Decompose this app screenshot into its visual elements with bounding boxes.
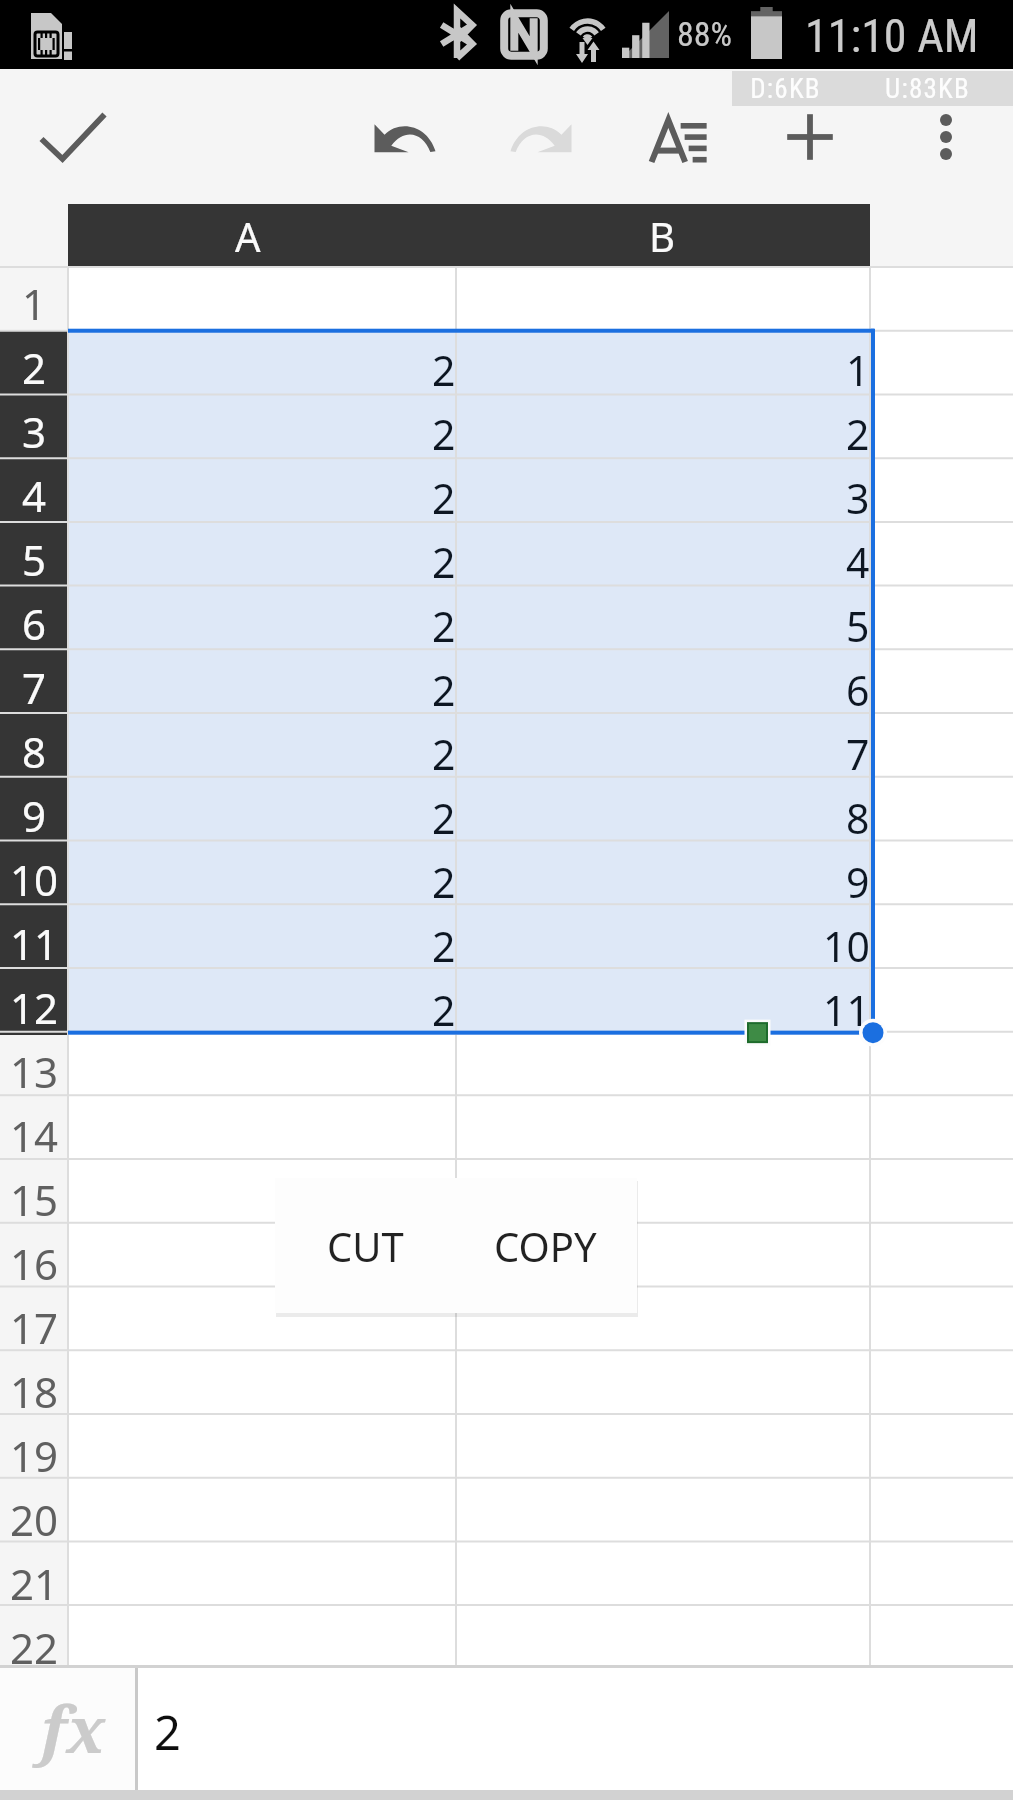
button[interactable]	[456, 1227, 870, 1291]
button[interactable]: 2	[68, 907, 456, 971]
button[interactable]: 11	[456, 971, 870, 1035]
button[interactable]: 21	[0, 1547, 68, 1611]
staticText: 2	[432, 534, 456, 590]
button[interactable]: 4	[0, 459, 68, 523]
button[interactable]: 7	[456, 715, 870, 779]
button[interactable]: 7	[0, 651, 68, 715]
button[interactable]: 3	[456, 459, 870, 523]
button[interactable]: 13	[0, 1035, 68, 1099]
button[interactable]: 2	[0, 331, 68, 395]
button[interactable]: 16	[0, 1227, 68, 1291]
button[interactable]: 4	[456, 523, 870, 587]
button[interactable]	[68, 1483, 456, 1547]
staticText: 5	[22, 531, 47, 588]
staticText: 88%	[677, 14, 733, 54]
button[interactable]	[456, 1035, 870, 1099]
button[interactable]	[68, 1611, 456, 1675]
button[interactable]: 5	[0, 523, 68, 587]
button[interactable]: 9	[0, 779, 68, 843]
staticText: 3	[846, 470, 870, 526]
button[interactable]: 2	[68, 395, 456, 459]
staticText: 12	[10, 979, 59, 1036]
button[interactable]	[68, 1547, 456, 1611]
button[interactable]	[68, 1419, 456, 1483]
button[interactable]: 19	[0, 1419, 68, 1483]
button[interactable]: Undo	[342, 69, 468, 204]
button[interactable]: 2	[456, 395, 870, 459]
staticText: 7	[22, 659, 47, 716]
button[interactable]: 12	[0, 971, 68, 1035]
staticText: fx	[41, 1685, 106, 1772]
button[interactable]: More options	[883, 69, 1008, 204]
button[interactable]: 2	[68, 587, 456, 651]
staticText: 2	[22, 339, 47, 396]
button[interactable]: 11	[0, 907, 68, 971]
button[interactable]	[68, 267, 456, 331]
staticText: 11	[10, 915, 59, 972]
button[interactable]: 6	[456, 651, 870, 715]
button[interactable]: 18	[0, 1355, 68, 1419]
staticText: 1	[846, 342, 870, 398]
staticText: 10	[823, 918, 870, 974]
staticText: 1	[22, 275, 47, 332]
button[interactable]: 8	[0, 715, 68, 779]
staticText: 2	[432, 342, 456, 398]
button[interactable]: 14	[0, 1099, 68, 1163]
button[interactable]: 1	[456, 331, 870, 395]
button[interactable]: 1	[0, 267, 68, 331]
button[interactable]: A	[68, 204, 456, 267]
button[interactable]	[456, 1355, 870, 1419]
button[interactable]: 17	[0, 1291, 68, 1355]
button[interactable]	[456, 1547, 870, 1611]
staticText: 10	[10, 851, 59, 908]
button[interactable]: Text formatting	[613, 69, 739, 204]
button[interactable]	[68, 1035, 456, 1099]
button[interactable]: 2	[68, 459, 456, 523]
button[interactable]: 6	[0, 587, 68, 651]
button[interactable]: 8	[456, 779, 870, 843]
staticText: 6	[22, 595, 47, 652]
button[interactable]	[456, 1163, 870, 1227]
button[interactable]: 2	[68, 715, 456, 779]
button[interactable]	[68, 1355, 456, 1419]
button[interactable]: 22	[0, 1611, 68, 1675]
button[interactable]	[456, 1483, 870, 1547]
button[interactable]: COPY	[455, 1178, 635, 1313]
staticText: 2	[432, 406, 456, 462]
button[interactable]: 5	[456, 587, 870, 651]
button[interactable]	[68, 1163, 456, 1227]
button[interactable]: 2	[68, 651, 456, 715]
staticText: 2	[432, 918, 456, 974]
button[interactable]	[456, 267, 870, 331]
staticText: 2	[432, 790, 456, 846]
button[interactable]	[456, 1099, 870, 1163]
button[interactable]	[68, 1227, 456, 1291]
button[interactable]: 2	[68, 779, 456, 843]
button[interactable]: Formula	[0, 1668, 135, 1790]
staticText: A	[235, 209, 261, 263]
button[interactable]: Insert	[747, 69, 873, 204]
button[interactable]	[68, 1291, 456, 1355]
button[interactable]: 3	[0, 395, 68, 459]
button[interactable]: 15	[0, 1163, 68, 1227]
button[interactable]	[68, 1099, 456, 1163]
button[interactable]: 2	[68, 843, 456, 907]
button[interactable]: Done	[10, 69, 136, 204]
button[interactable]: 2	[68, 331, 456, 395]
button[interactable]	[456, 1419, 870, 1483]
button[interactable]: 2	[138, 1668, 1013, 1790]
button[interactable]: 2	[68, 523, 456, 587]
button[interactable]	[456, 1611, 870, 1675]
button[interactable]	[456, 1291, 870, 1355]
button[interactable]: 9	[456, 843, 870, 907]
staticText: 4	[846, 534, 870, 590]
button[interactable]: B	[456, 204, 870, 267]
staticText: 14	[10, 1107, 59, 1164]
button[interactable]: 2	[68, 971, 456, 1035]
staticText: 17	[10, 1299, 59, 1356]
button[interactable]: 20	[0, 1483, 68, 1547]
button[interactable]: 10	[0, 843, 68, 907]
button[interactable]: Redo	[478, 69, 604, 204]
button[interactable]: 10	[456, 907, 870, 971]
button[interactable]: CUT	[275, 1178, 455, 1313]
